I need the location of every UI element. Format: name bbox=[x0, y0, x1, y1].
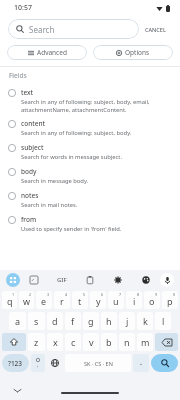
button[interactable]: SK · CS · EN bbox=[65, 354, 131, 372]
button[interactable]: k bbox=[137, 312, 153, 330]
staticText: from bbox=[21, 215, 37, 224]
staticText: Search for words in message subject. bbox=[21, 153, 122, 161]
staticText: , bbox=[37, 362, 39, 369]
staticText: f bbox=[71, 315, 75, 327]
staticText: o bbox=[149, 295, 155, 307]
staticText: 2 bbox=[29, 292, 32, 297]
button[interactable]: GIF bbox=[48, 276, 76, 284]
staticText: Search in mail notes. bbox=[21, 201, 78, 209]
staticText: 3 bbox=[47, 292, 50, 297]
button[interactable]: subject bbox=[0, 140, 180, 164]
staticText: c bbox=[71, 336, 76, 348]
staticText: . bbox=[140, 358, 142, 368]
button[interactable]: CANCEL bbox=[139, 22, 172, 37]
staticText: q bbox=[7, 295, 13, 307]
staticText: 7 bbox=[119, 292, 122, 297]
staticText: h bbox=[106, 315, 112, 327]
button[interactable]: text bbox=[0, 85, 180, 116]
button[interactable]: z bbox=[28, 333, 45, 351]
button[interactable]: n bbox=[119, 333, 135, 351]
button[interactable]: Emoji bbox=[31, 354, 45, 372]
staticText: r bbox=[60, 295, 64, 307]
staticText: 0 bbox=[173, 292, 176, 297]
staticText: t bbox=[78, 295, 82, 307]
button[interactable]: m bbox=[137, 333, 153, 351]
button[interactable]: Apps bbox=[6, 273, 20, 287]
button[interactable]: Shift bbox=[2, 333, 26, 351]
button[interactable]: Options bbox=[93, 45, 173, 60]
staticText: b bbox=[106, 336, 112, 348]
staticText: Advanced bbox=[37, 48, 67, 57]
button[interactable]: Settings bbox=[104, 270, 132, 289]
staticText: n bbox=[124, 336, 130, 348]
staticText: 4 bbox=[65, 292, 68, 297]
staticText: 1 bbox=[12, 292, 15, 297]
button[interactable]: Clipboard bbox=[76, 270, 104, 289]
button[interactable]: 8 bbox=[126, 291, 142, 309]
staticText: u bbox=[113, 295, 119, 307]
staticText: w bbox=[23, 295, 31, 307]
button[interactable]: v bbox=[83, 333, 99, 351]
staticText: ?123 bbox=[8, 359, 23, 368]
button[interactable]: content bbox=[0, 116, 180, 140]
button[interactable]: Sticker bbox=[20, 270, 48, 289]
button[interactable]: 4 bbox=[54, 291, 70, 309]
button[interactable]: f bbox=[65, 312, 81, 330]
staticText: notes bbox=[21, 191, 39, 200]
button[interactable]: j bbox=[119, 312, 135, 330]
button[interactable]: c bbox=[65, 333, 81, 351]
staticText: text bbox=[21, 88, 34, 97]
button[interactable]: 2 bbox=[19, 291, 34, 309]
staticText: body bbox=[21, 167, 37, 176]
button[interactable]: h bbox=[101, 312, 117, 330]
staticText: d bbox=[52, 315, 58, 327]
button[interactable]: 9 bbox=[144, 291, 160, 309]
staticText: CANCEL bbox=[145, 26, 166, 33]
staticText: y bbox=[96, 295, 101, 307]
button[interactable]: s bbox=[28, 312, 45, 330]
staticText: e bbox=[41, 295, 47, 307]
staticText: Search in message body. bbox=[21, 177, 89, 185]
button[interactable]: Backspace bbox=[155, 333, 178, 351]
button[interactable]: 6 bbox=[90, 291, 106, 309]
button[interactable]: 7 bbox=[108, 291, 124, 309]
staticText: x bbox=[53, 336, 58, 348]
button[interactable]: b bbox=[101, 333, 117, 351]
button[interactable]: 3 bbox=[36, 291, 52, 309]
button[interactable]: Advanced bbox=[7, 45, 87, 60]
button[interactable]: d bbox=[47, 312, 63, 330]
button[interactable]: . bbox=[133, 354, 149, 372]
staticText: subject bbox=[21, 143, 44, 152]
staticText: a bbox=[15, 315, 21, 327]
staticText: Search in any of following: subject, bod… bbox=[21, 129, 132, 137]
staticText: SK · CS · EN bbox=[84, 360, 113, 367]
button[interactable]: body bbox=[0, 164, 180, 188]
button[interactable]: Language bbox=[47, 354, 63, 372]
button[interactable]: ?123 bbox=[2, 354, 29, 372]
staticText: Options bbox=[125, 48, 150, 57]
staticText: j bbox=[126, 315, 129, 327]
staticText: Used to specify sender in 'from' field. bbox=[21, 225, 122, 233]
button[interactable]: Search bbox=[8, 19, 139, 39]
staticText: k bbox=[143, 315, 148, 327]
button[interactable]: 0 bbox=[162, 291, 178, 309]
button[interactable]: Theme bbox=[132, 270, 160, 289]
button[interactable]: 1 bbox=[2, 291, 17, 309]
button[interactable]: a bbox=[9, 312, 26, 330]
button[interactable]: from bbox=[0, 212, 180, 236]
staticText: content bbox=[21, 119, 46, 128]
button[interactable]: Voice input bbox=[160, 273, 174, 287]
staticText: 10:57 bbox=[14, 3, 32, 13]
button[interactable]: Search bbox=[151, 354, 178, 372]
button[interactable]: 5 bbox=[72, 291, 88, 309]
button[interactable]: l bbox=[155, 312, 171, 330]
staticText: v bbox=[89, 336, 94, 348]
button[interactable]: x bbox=[47, 333, 63, 351]
staticText: GIF bbox=[57, 276, 67, 284]
staticText: Search in any of following: subject, bod… bbox=[21, 98, 150, 113]
button[interactable]: g bbox=[83, 312, 99, 330]
button[interactable]: notes bbox=[0, 188, 180, 212]
staticText: p bbox=[167, 295, 173, 307]
staticText: l bbox=[162, 315, 165, 327]
staticText: 8 bbox=[137, 292, 140, 297]
